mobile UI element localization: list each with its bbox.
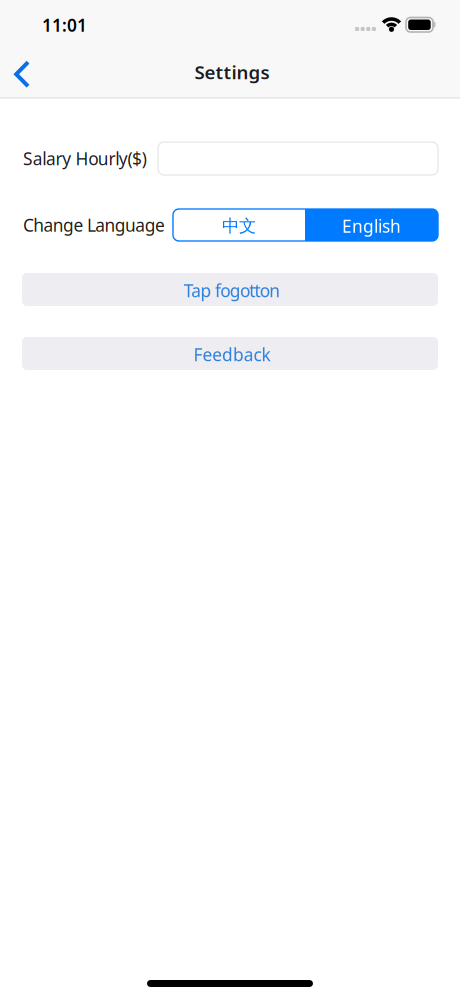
button[interactable]: Salary Hourly in dollars xyxy=(158,142,438,175)
staticText: 中文 xyxy=(222,215,256,237)
staticText: English xyxy=(342,214,401,237)
button[interactable]: Feedback xyxy=(22,337,438,370)
staticText: 11:01 xyxy=(42,13,87,36)
staticText: Tap fogotton xyxy=(184,279,280,302)
staticText: Change Language xyxy=(23,213,165,236)
staticText: Salary Hourly($) xyxy=(23,147,147,170)
button[interactable]: 中文 xyxy=(173,209,305,241)
staticText: Settings xyxy=(194,60,269,84)
button[interactable]: Tap fogotton xyxy=(22,273,438,306)
button[interactable]: English xyxy=(305,209,438,241)
button[interactable]: Back xyxy=(0,52,43,96)
staticText: Feedback xyxy=(193,343,270,366)
